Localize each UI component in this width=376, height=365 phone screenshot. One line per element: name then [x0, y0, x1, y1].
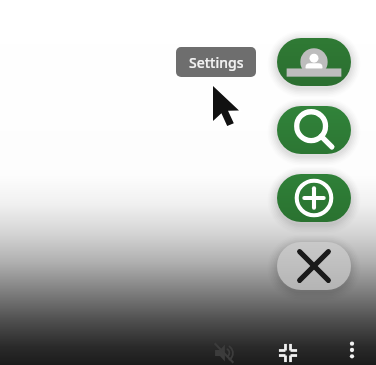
- button[interactable]: Settings: [176, 47, 256, 77]
- button[interactable]: Account: [277, 38, 351, 86]
- button[interactable]: Close: [277, 242, 351, 290]
- button[interactable]: Search: [277, 106, 351, 154]
- button[interactable]: More options: [334, 332, 370, 365]
- button[interactable]: Exit fullscreen: [270, 335, 306, 365]
- button[interactable]: Unmute: [206, 335, 242, 365]
- staticText: Settings: [189, 53, 244, 72]
- button[interactable]: Add: [277, 174, 351, 222]
